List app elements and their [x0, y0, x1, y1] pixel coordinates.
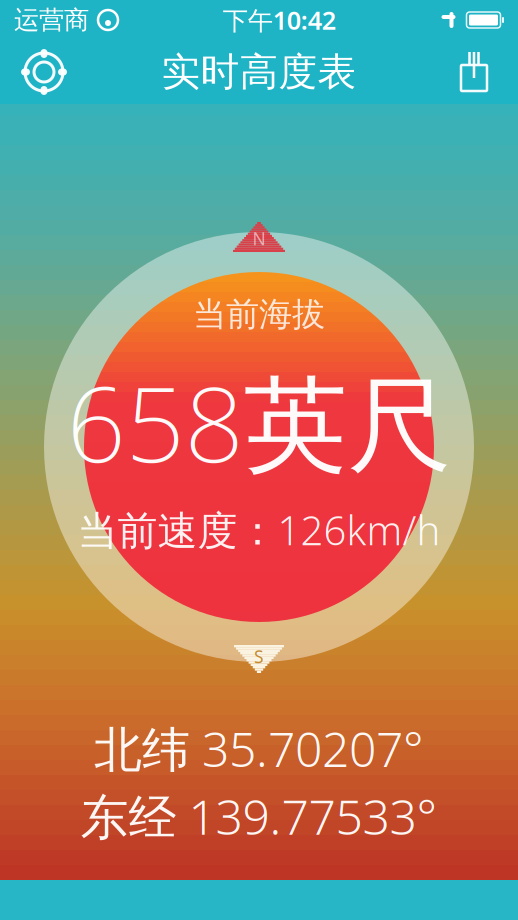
staticText: S [254, 645, 264, 668]
staticText: 当前海拔 [193, 294, 325, 335]
staticText: 当前速度：126km/h [77, 503, 440, 556]
staticText: 658英尺 [66, 353, 451, 491]
button[interactable]: 设置 [12, 40, 76, 104]
staticText: 东经 139.77533° [80, 784, 437, 848]
staticText: 下午10:42 [223, 3, 336, 37]
staticText: 运营商 [14, 4, 89, 35]
staticText: 北纬 35.70207° [94, 716, 424, 780]
staticText: N [252, 227, 265, 250]
staticText: 实时高度表 [161, 48, 356, 96]
button[interactable]: 分享 [442, 40, 506, 104]
